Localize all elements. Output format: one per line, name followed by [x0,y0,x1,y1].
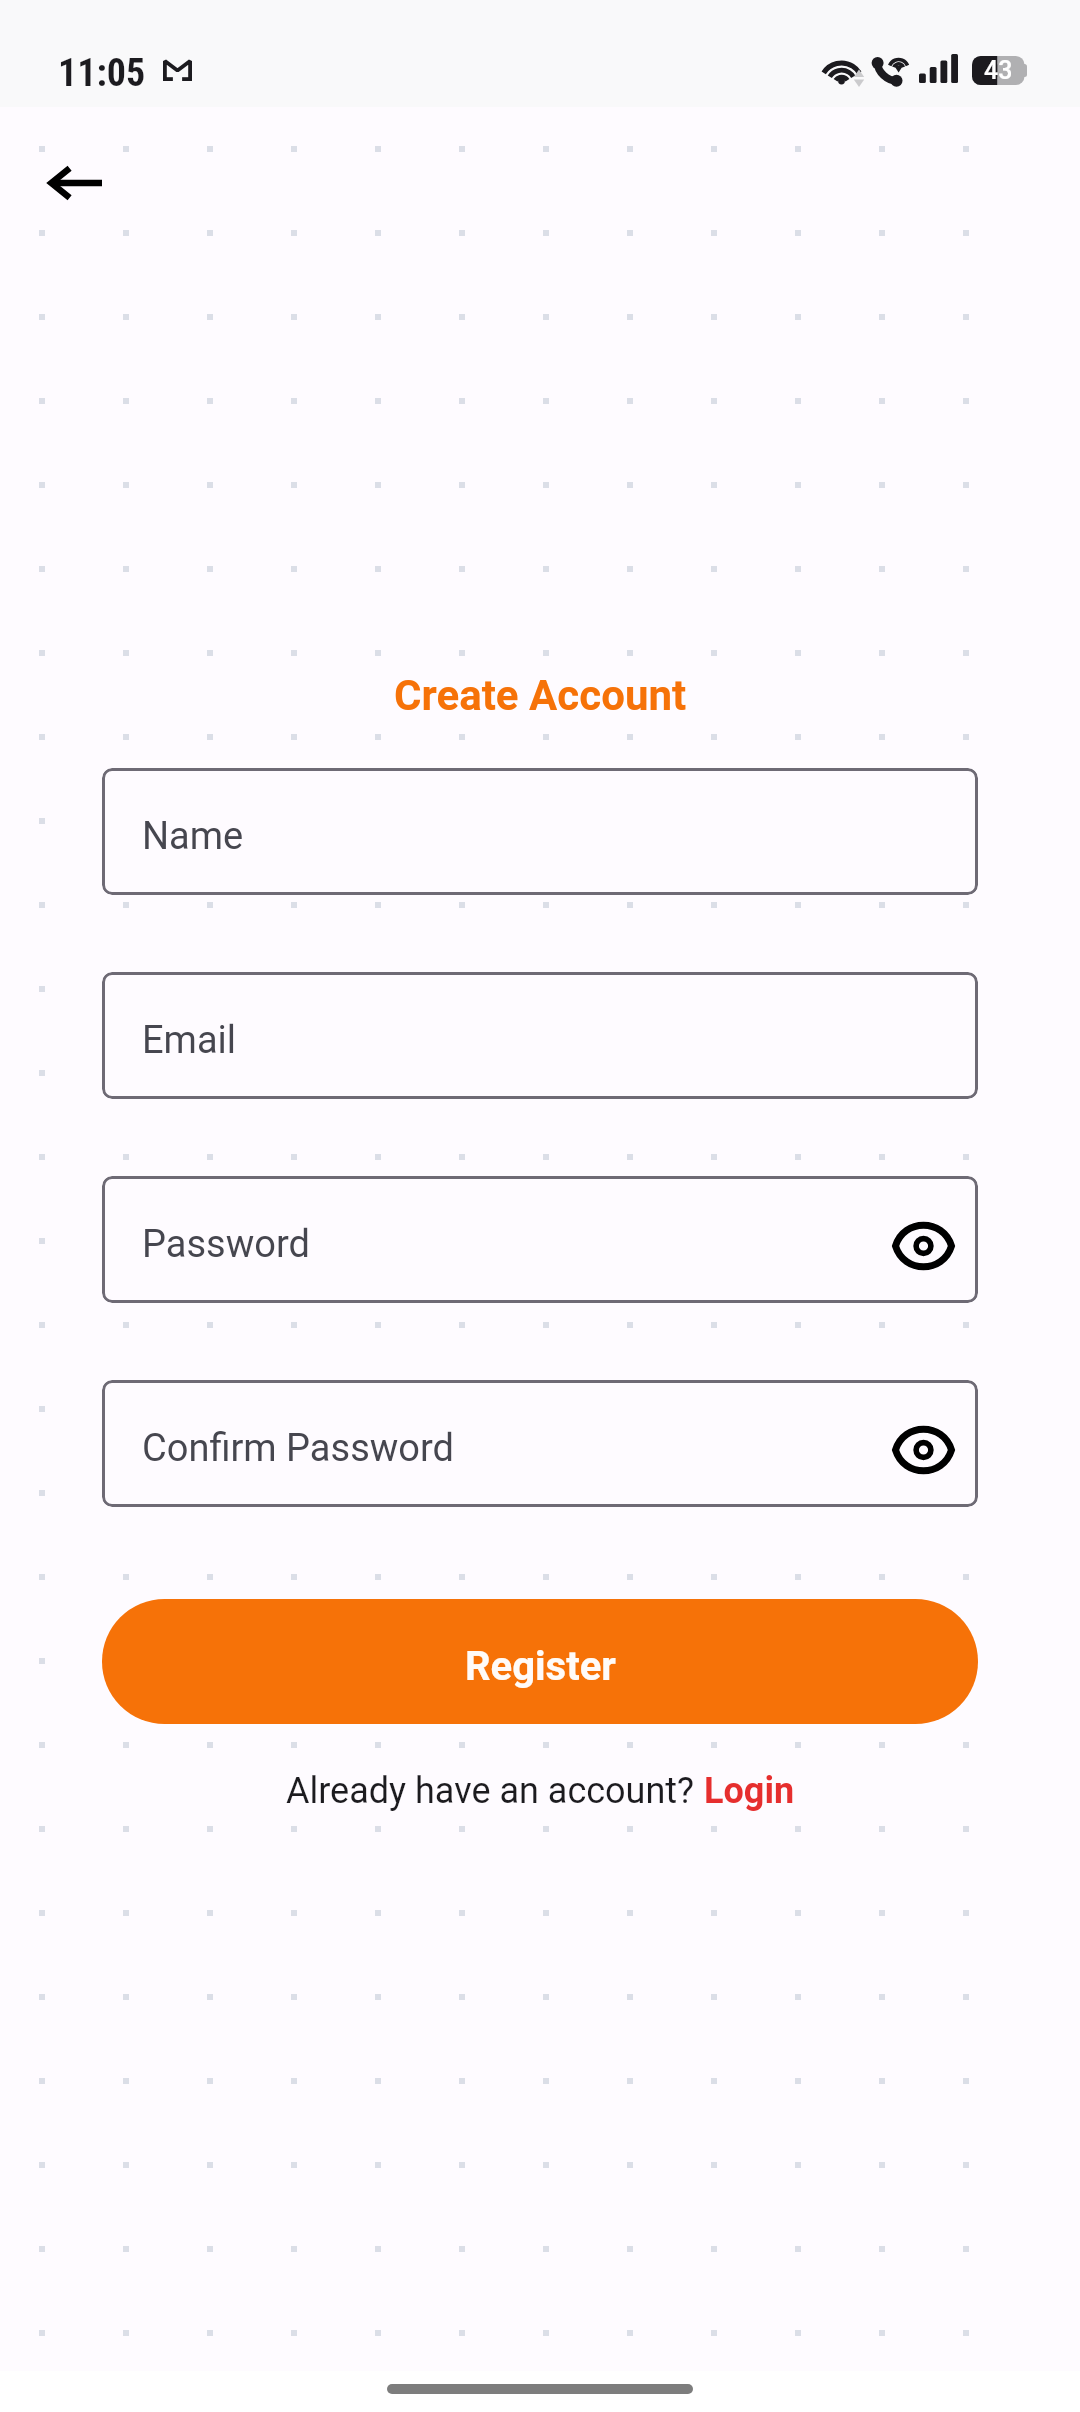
staticText: Already have an account? [286,1770,704,1812]
button[interactable]: Already have an account? [286,1770,795,1812]
button[interactable]: Password [102,1176,978,1303]
staticText: Create Account [394,671,687,720]
staticText: 11:05 [58,51,146,96]
button[interactable]: Confirm Password [102,1380,978,1507]
button[interactable]: Show password [879,1202,967,1290]
button[interactable]: Back [27,135,123,231]
staticText: Register [465,1643,616,1690]
button[interactable]: Show password [879,1406,967,1494]
staticText: Login [704,1770,795,1812]
staticText: Name [142,814,244,859]
staticText: Password [142,1222,310,1267]
button[interactable]: Email [102,972,978,1099]
staticText: Email [142,1018,237,1063]
button[interactable]: Name [102,768,978,895]
button[interactable]: Register [102,1599,978,1724]
staticText: Confirm Password [142,1426,454,1471]
staticText: 43 [984,56,1013,85]
